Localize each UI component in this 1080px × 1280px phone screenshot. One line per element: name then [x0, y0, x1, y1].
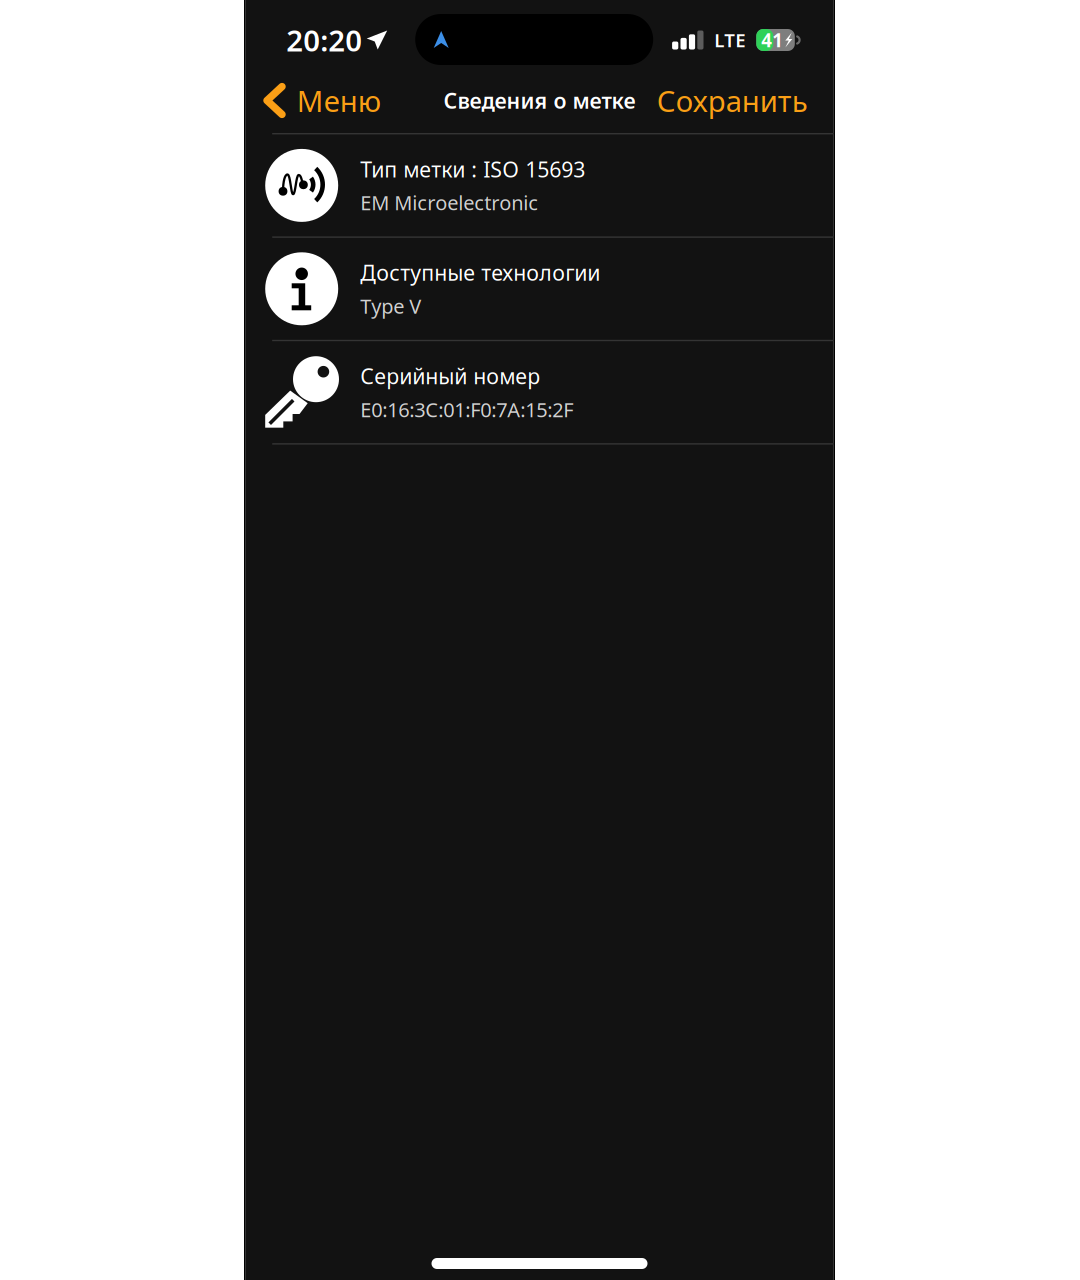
staticText: 41 — [761, 28, 783, 52]
button[interactable]: Серийный номер — [245, 341, 834, 443]
staticText: LTE — [714, 28, 745, 52]
staticText: Сведения о метке — [443, 86, 635, 115]
staticText: E0:16:3C:01:F0:7A:15:2F — [360, 396, 573, 423]
staticText: Type V — [360, 293, 421, 319]
button[interactable]: Тип метки : ISO 15693 — [245, 134, 834, 236]
staticText: Доступные технологии — [360, 258, 600, 287]
staticText: Сохранить — [657, 81, 808, 120]
staticText: EM Microelectronic — [360, 189, 538, 216]
button[interactable]: Доступные технологии — [245, 238, 834, 340]
button[interactable]: Меню — [245, 75, 393, 126]
button[interactable]: Сохранить — [645, 75, 834, 126]
staticText: Тип метки : ISO 15693 — [360, 155, 585, 183]
staticText: Серийный номер — [360, 362, 540, 390]
staticText: Меню — [297, 81, 381, 120]
staticText: 20:20 — [286, 20, 362, 59]
